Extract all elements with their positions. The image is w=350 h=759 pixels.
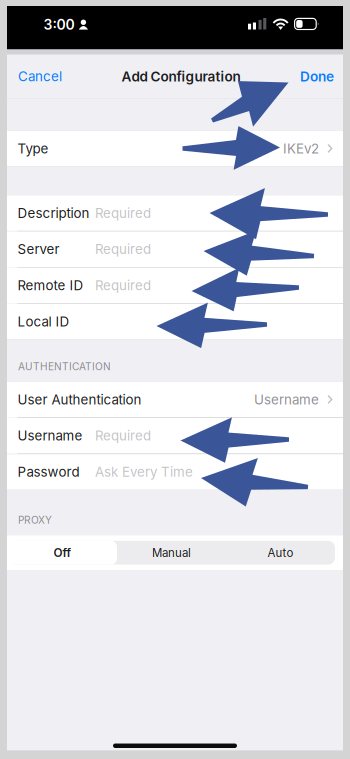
button[interactable]: Type <box>7 131 343 166</box>
staticText: Required <box>95 205 151 221</box>
staticText: 3:00 <box>43 16 74 33</box>
staticText: Manual <box>152 546 191 560</box>
button[interactable]: Password <box>7 454 343 490</box>
staticText: Ask Every Time <box>95 464 193 480</box>
staticText: Cancel <box>18 68 62 84</box>
button[interactable]: Cancel <box>7 54 70 98</box>
button[interactable]: User Authentication <box>7 382 343 417</box>
staticText: Required <box>95 428 151 444</box>
staticText: Password <box>17 464 79 480</box>
staticText: Remote ID <box>17 277 83 293</box>
button[interactable]: Done <box>292 54 343 98</box>
button[interactable]: Local ID <box>7 304 343 339</box>
staticText: IKEv2 <box>283 140 319 157</box>
staticText: PROXY <box>18 514 52 526</box>
staticText: Auto <box>267 546 293 560</box>
staticText: Username <box>17 428 82 444</box>
staticText: Server <box>17 241 59 257</box>
staticText: User Authentication <box>17 391 141 408</box>
staticText: Local ID <box>17 314 69 330</box>
button[interactable]: Description <box>7 195 343 231</box>
staticText: Required <box>95 277 151 293</box>
button[interactable]: Auto <box>226 541 335 565</box>
staticText: Done <box>300 68 334 85</box>
button[interactable]: Server <box>7 231 343 267</box>
button[interactable]: Manual <box>117 541 226 565</box>
staticText: Username <box>254 391 319 408</box>
staticText: Description <box>17 205 89 221</box>
staticText: Required <box>95 241 151 257</box>
button[interactable]: Off <box>8 541 117 565</box>
button[interactable]: Username <box>7 418 343 453</box>
staticText: Add Configuration <box>121 68 240 85</box>
staticText: Off <box>53 546 71 560</box>
staticText: AUTHENTICATION <box>18 360 111 373</box>
button[interactable]: Remote ID <box>7 268 343 303</box>
staticText: Type <box>17 140 48 157</box>
